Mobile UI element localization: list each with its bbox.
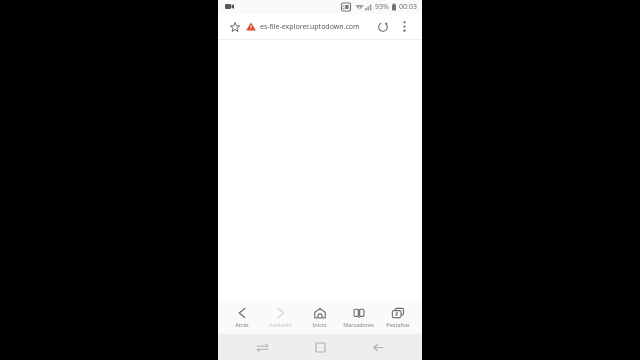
staticText: Inicio <box>312 321 327 328</box>
button[interactable]: Atrás <box>223 302 261 334</box>
button[interactable]: Marcadores <box>339 302 378 334</box>
staticText: Atrás <box>235 321 249 328</box>
staticText: 93% <box>375 2 389 12</box>
staticText: Adelante <box>269 321 292 328</box>
staticText: Pestañas <box>386 321 410 328</box>
button[interactable]: Reload <box>371 14 395 39</box>
button[interactable]: Recent apps <box>248 334 276 360</box>
staticText: 00:03 <box>399 2 417 12</box>
button[interactable]: Bookmark <box>227 14 243 39</box>
button[interactable]: Back <box>364 334 392 360</box>
button[interactable]: Home <box>306 334 334 360</box>
button[interactable]: es-file-explorer.uptodown.com <box>243 14 371 39</box>
staticText: Marcadores <box>343 321 374 328</box>
button[interactable]: More options <box>395 14 413 39</box>
staticText: es-file-explorer.uptodown.com <box>260 22 360 32</box>
button[interactable]: Adelante <box>261 302 300 334</box>
button[interactable]: Pestañas <box>378 302 417 334</box>
button[interactable]: Inicio <box>300 302 339 334</box>
